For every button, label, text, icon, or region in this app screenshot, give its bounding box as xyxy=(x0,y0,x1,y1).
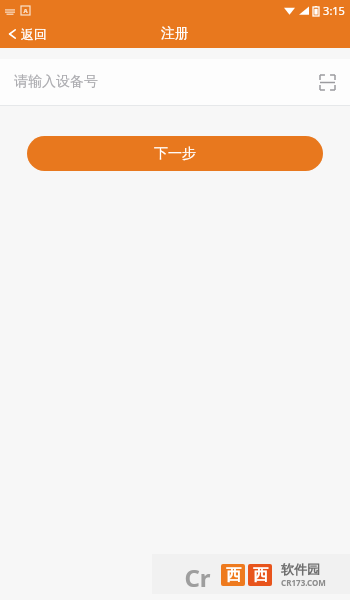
staticText: CR173.COM xyxy=(281,577,326,588)
button[interactable]: 返回 xyxy=(0,20,59,48)
staticText: 西 xyxy=(226,566,241,585)
staticText: 请输入设备号 xyxy=(14,73,98,91)
staticText: 西 xyxy=(253,566,268,585)
staticText: 注册 xyxy=(161,25,189,43)
staticText: Cr xyxy=(184,561,211,588)
staticText: 返回 xyxy=(21,26,47,42)
staticText: 软件园 xyxy=(281,561,320,577)
button[interactable]: Scan device code xyxy=(314,69,340,95)
staticText: 下一步 xyxy=(154,145,196,163)
staticText: 3:15 xyxy=(323,3,345,18)
button[interactable]: 下一步 xyxy=(27,136,323,171)
staticText: A xyxy=(23,7,28,15)
button[interactable]: 请输入设备号 xyxy=(0,59,350,105)
